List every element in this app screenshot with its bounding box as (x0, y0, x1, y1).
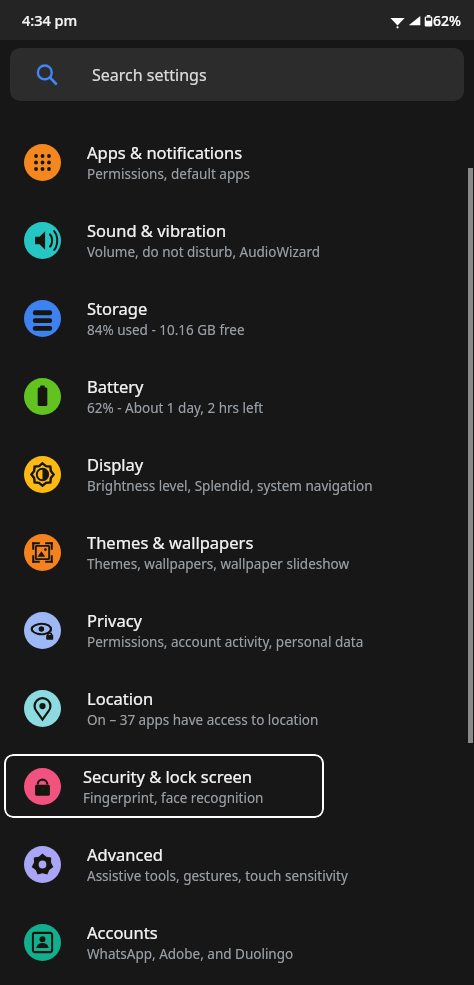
button[interactable]: Security & lock screen (4, 754, 324, 818)
staticText: Advanced (87, 843, 163, 865)
button[interactable]: Search settings (10, 48, 464, 101)
staticText: Accounts (87, 921, 158, 943)
staticText: Privacy (87, 609, 143, 631)
staticText: Themes, wallpapers, wallpaper slideshow (87, 555, 350, 573)
staticText: Brightness level, Splendid, system navig… (87, 477, 373, 495)
button[interactable]: Advanced (0, 825, 474, 903)
staticText: Apps & notifications (87, 141, 243, 163)
staticText: 62% (433, 11, 461, 30)
button[interactable]: Themes & wallpapers (0, 513, 474, 591)
staticText: Sound & vibration (87, 219, 227, 241)
staticText: Storage (87, 297, 148, 319)
button[interactable]: Display (0, 435, 474, 513)
staticText: 4:34 pm (22, 10, 78, 30)
staticText: Permissions, account activity, personal … (87, 633, 364, 651)
staticText: Volume, do not disturb, AudioWizard (87, 243, 321, 261)
staticText: Battery (87, 375, 144, 397)
button[interactable]: Battery (0, 357, 474, 435)
staticText: Permissions, default apps (87, 165, 250, 183)
staticText: Location (87, 687, 154, 709)
staticText: Fingerprint, face recognition (83, 789, 264, 807)
staticText: Security & lock screen (83, 765, 252, 787)
staticText: Search settings (92, 64, 207, 86)
staticText: Display (87, 453, 144, 475)
button[interactable]: Storage (0, 279, 474, 357)
button[interactable]: Accounts (0, 903, 474, 981)
button[interactable]: Location (0, 669, 474, 747)
staticText: Assistive tools, gestures, touch sensiti… (87, 867, 348, 885)
button[interactable]: Apps & notifications (0, 123, 474, 201)
button[interactable]: Privacy (0, 591, 474, 669)
button[interactable]: Sound & vibration (0, 201, 474, 279)
staticText: WhatsApp, Adobe, and Duolingo (87, 945, 294, 963)
staticText: Themes & wallpapers (87, 531, 254, 553)
staticText: 62% - About 1 day, 2 hrs left (87, 399, 264, 417)
staticText: On – 37 apps have access to location (87, 711, 319, 729)
staticText: 84% used - 10.16 GB free (87, 321, 245, 339)
